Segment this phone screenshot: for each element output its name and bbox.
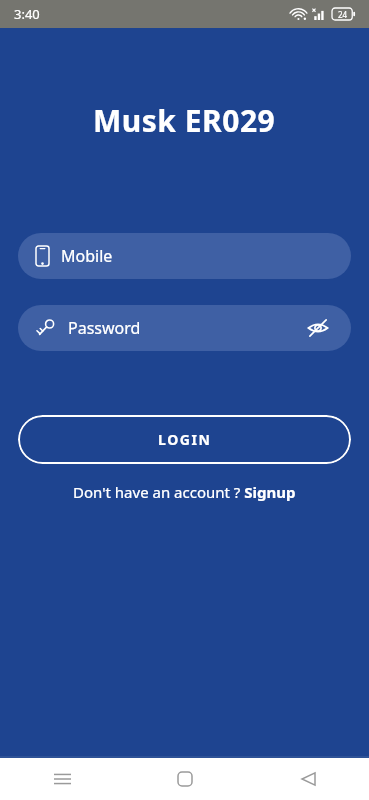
button[interactable]: LOGIN	[18, 415, 351, 464]
button[interactable]: Don't have an account ? Signup	[69, 478, 300, 506]
button[interactable]: Recent apps	[38, 758, 86, 800]
staticText: Mobile	[61, 245, 333, 267]
staticText: LOGIN	[158, 430, 212, 449]
button[interactable]: Show password	[303, 313, 333, 343]
staticText: Password	[68, 317, 303, 339]
button[interactable]: Password	[18, 305, 351, 351]
staticText: Don't have an account ? Signup	[73, 482, 296, 502]
staticText: 3:40	[14, 5, 40, 23]
button[interactable]: Mobile	[18, 233, 351, 279]
button[interactable]: Home	[161, 758, 209, 800]
button[interactable]: Back	[284, 758, 332, 800]
staticText: 24	[338, 9, 348, 20]
staticText: Musk ER029	[93, 100, 276, 141]
